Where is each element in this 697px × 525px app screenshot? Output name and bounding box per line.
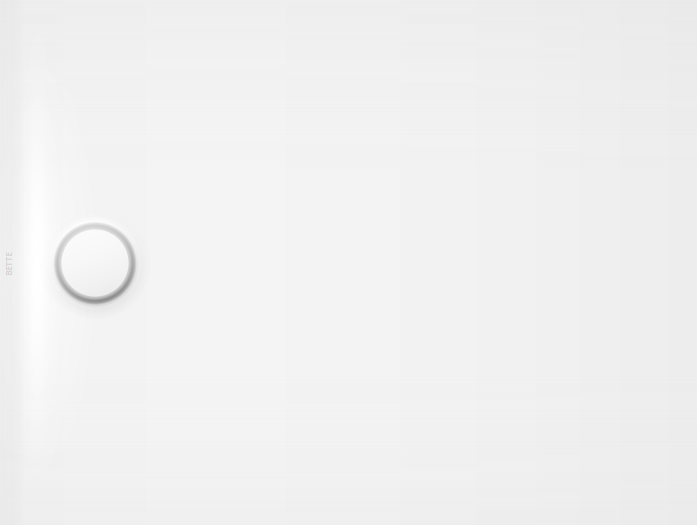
staticText: BETTE — [0, 259, 20, 269]
